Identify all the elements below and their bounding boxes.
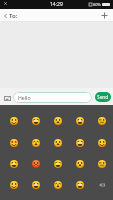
staticText: 60% bbox=[93, 2, 101, 7]
button[interactable]: Emoji bbox=[91, 110, 113, 132]
button[interactable]: Emoji bbox=[47, 153, 69, 174]
button[interactable]: Emoji bbox=[25, 110, 47, 132]
button[interactable]: Emoji bbox=[47, 132, 69, 153]
staticText: 14:29 bbox=[50, 1, 63, 8]
button[interactable]: Emoji bbox=[25, 174, 47, 195]
button[interactable]: Send bbox=[95, 92, 111, 102]
staticText: Send bbox=[97, 94, 109, 101]
button[interactable]: Hello bbox=[13, 92, 92, 103]
button[interactable]: Emoji bbox=[69, 110, 91, 132]
button[interactable]: Emoji bbox=[3, 132, 25, 153]
button[interactable]: Emoji bbox=[69, 153, 91, 174]
button[interactable]: Emoji bbox=[69, 174, 91, 195]
button[interactable]: Attach image bbox=[3, 91, 12, 103]
button[interactable]: Emoji bbox=[25, 132, 47, 153]
button[interactable]: Backspace bbox=[91, 174, 113, 195]
staticText: To: bbox=[9, 12, 18, 20]
button[interactable]: Back bbox=[1, 9, 9, 21]
button[interactable]: Emoji bbox=[47, 174, 69, 195]
button[interactable]: Emoji bbox=[3, 110, 25, 132]
button[interactable]: Emoji bbox=[3, 174, 25, 195]
button[interactable]: Emoji bbox=[91, 132, 113, 153]
button[interactable]: Emoji bbox=[47, 110, 69, 132]
button[interactable]: Emoji bbox=[69, 132, 91, 153]
button[interactable]: Emoji bbox=[25, 153, 47, 174]
button[interactable]: Emoji bbox=[91, 153, 113, 174]
staticText: Hello bbox=[18, 94, 31, 101]
button[interactable]: Add recipient bbox=[98, 9, 110, 21]
button[interactable]: Emoji bbox=[3, 153, 25, 174]
